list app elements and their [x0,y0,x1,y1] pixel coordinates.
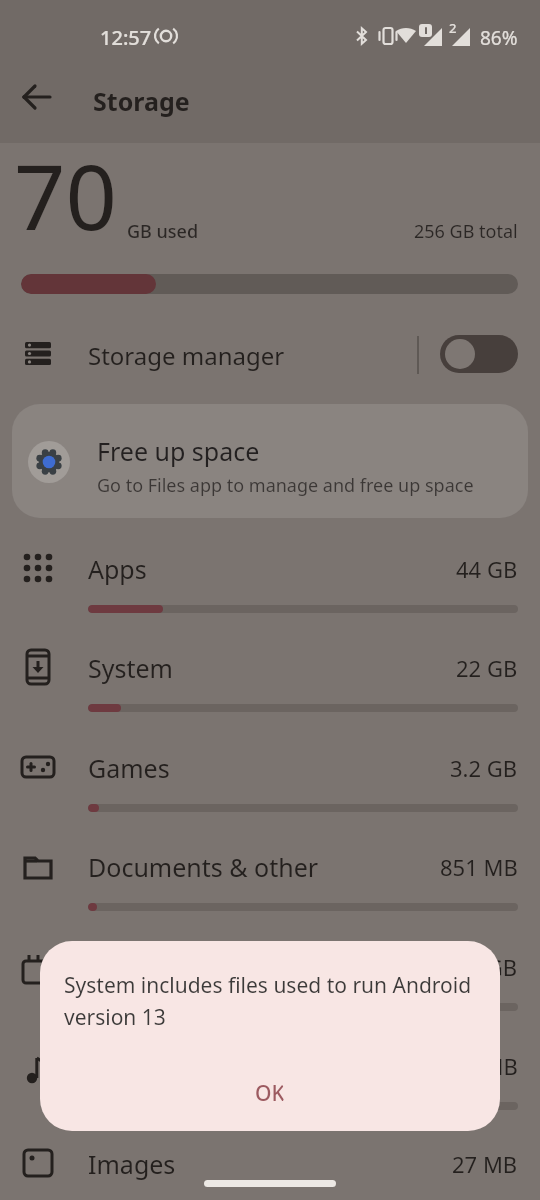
staticText: Videos [88,950,167,984]
staticText: Apps [88,552,147,586]
button[interactable]: Free up space [12,404,528,518]
staticText: 22 GB [456,653,518,683]
button[interactable]: OK [255,1079,285,1108]
staticText: Storage manager [88,339,285,372]
staticText: 44 GB [456,554,518,584]
button[interactable] [16,76,60,120]
button[interactable] [0,528,540,608]
staticText: 27 MB [452,1149,518,1179]
button[interactable] [0,1025,540,1105]
button[interactable] [0,320,410,390]
staticText: GB used [127,219,199,244]
button[interactable] [0,727,540,807]
staticText: 851 MB [440,852,518,882]
staticText: version 13 [64,1003,166,1032]
staticText: Images [88,1147,176,1181]
staticText: System includes files used to run Androi… [64,971,472,1000]
button[interactable] [440,335,518,373]
staticText: 70 [14,134,117,257]
button[interactable] [0,826,540,906]
staticText: Games [88,751,170,785]
staticText: 86% [480,25,518,51]
staticText: 563 MB [440,1051,518,1081]
staticText: 12:57 [100,24,152,51]
staticText: Documents & other [88,850,319,884]
staticText: 1.5 GB [450,952,518,982]
staticText: Free up space [97,434,260,468]
button[interactable] [0,1123,540,1200]
staticText: 2 [449,19,457,37]
staticText: 256 GB total [414,219,518,244]
staticText: System [88,651,173,685]
button[interactable] [0,926,540,1006]
staticText: OK [255,1079,285,1108]
staticText: Storage [93,84,190,118]
staticText: Go to Files app to manage and free up sp… [97,473,474,498]
staticText: 3.2 GB [450,753,518,783]
button[interactable] [0,627,540,707]
